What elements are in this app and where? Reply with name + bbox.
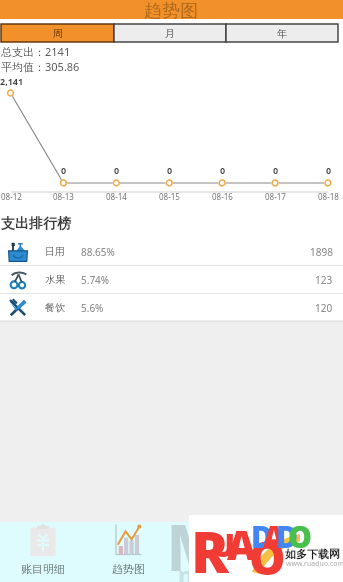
staticText: 餐饮 xyxy=(45,301,65,314)
button[interactable]: 统计 xyxy=(171,522,257,582)
staticText: R xyxy=(191,513,229,582)
staticText: A xyxy=(263,516,285,557)
staticText: 88.65% xyxy=(81,245,115,259)
staticText: 5.6% xyxy=(81,301,104,315)
staticText: 日用 xyxy=(45,245,65,258)
staticText: 统计 xyxy=(203,562,225,576)
staticText: 120 xyxy=(315,301,333,315)
staticText: 平均值：305.86 xyxy=(1,59,80,74)
staticText: 水果 xyxy=(45,273,65,286)
staticText: 如多下载网 xyxy=(285,547,340,561)
staticText: m xyxy=(178,558,202,582)
staticText: 月 xyxy=(165,27,175,40)
button[interactable]: 周 xyxy=(1,24,114,42)
staticText: 2,141 xyxy=(0,75,24,87)
staticText: U xyxy=(211,523,236,567)
staticText: 08-13 xyxy=(53,191,74,202)
staticText: 账目明细 xyxy=(21,562,65,576)
staticText: 123 xyxy=(315,273,333,287)
staticText: 08-17 xyxy=(265,191,286,202)
button[interactable]: 年 xyxy=(226,24,338,42)
staticText: 1898 xyxy=(310,245,333,259)
staticText: 08-14 xyxy=(106,191,127,202)
staticText: O xyxy=(249,526,286,582)
staticText: 08-18 xyxy=(318,191,339,202)
button[interactable]: 趋势图 xyxy=(85,522,171,582)
button[interactable]: 水果 xyxy=(0,266,343,293)
staticText: 总支出：2141 xyxy=(1,44,71,59)
staticText: 更多 xyxy=(289,562,311,576)
staticText: 5.74% xyxy=(81,273,110,287)
staticText: D xyxy=(251,516,274,557)
button[interactable]: 月 xyxy=(114,24,226,42)
button[interactable]: 日用 xyxy=(0,238,343,265)
staticText: 趋势图 xyxy=(144,0,198,19)
staticText: D xyxy=(276,516,299,557)
staticText: 趋势图 xyxy=(112,562,145,576)
other: 日用 xyxy=(8,242,28,262)
staticText: 0 xyxy=(326,164,332,176)
button[interactable]: 餐饮 xyxy=(0,294,343,321)
staticText: 0 xyxy=(273,164,279,176)
staticText: 周 xyxy=(53,27,63,40)
staticText: www.ruaduo.com xyxy=(286,559,343,569)
staticText: 08-16 xyxy=(212,191,233,202)
other: 水果 xyxy=(8,270,28,290)
staticText: 0 xyxy=(114,164,120,176)
staticText: 支出排行榜 xyxy=(1,215,71,233)
staticText: 0 xyxy=(220,164,226,176)
other: 餐饮 xyxy=(8,298,28,318)
staticText: 0 xyxy=(167,164,173,176)
staticText: A xyxy=(227,517,257,571)
staticText: M xyxy=(166,503,227,582)
button[interactable]: 更多 xyxy=(257,522,343,582)
staticText: 08-15 xyxy=(159,191,180,202)
staticText: 08-12 xyxy=(1,191,22,202)
button[interactable]: 账目明细 xyxy=(0,522,85,582)
staticText: O xyxy=(288,516,312,557)
staticText: 0 xyxy=(61,164,67,176)
staticText: 年 xyxy=(277,27,287,40)
